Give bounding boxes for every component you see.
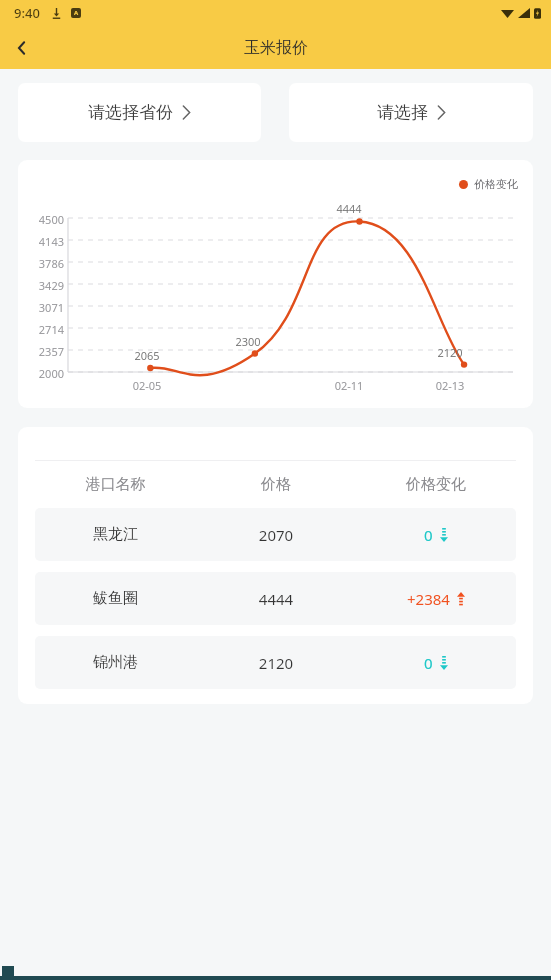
staticText: 价格变化 [474, 177, 518, 191]
staticText: 价格 [196, 475, 356, 494]
staticText: 2714 [28, 322, 64, 337]
staticText: 02-13 [432, 378, 468, 393]
staticText: 2070 [196, 525, 356, 545]
staticText: 3429 [28, 278, 64, 293]
button[interactable]: Back [0, 26, 44, 69]
staticText: 4500 [28, 212, 64, 227]
staticText: 2357 [28, 344, 64, 359]
staticText: 鲅鱼圈 [35, 589, 196, 608]
staticText: 02-11 [331, 378, 367, 393]
button[interactable]: 鲅鱼圈 [35, 572, 516, 625]
staticText: 2300 [231, 334, 265, 349]
staticText: +2384 [407, 589, 450, 609]
staticText: 价格变化 [356, 475, 516, 494]
button[interactable]: 锦州港 [35, 636, 516, 689]
staticText: 请选择省份 [88, 102, 173, 123]
button[interactable]: 请选择 [289, 83, 533, 142]
staticText: 2120 [433, 345, 467, 360]
staticText: 0 [424, 525, 433, 545]
staticText: 玉米报价 [244, 38, 308, 58]
staticText: A [74, 9, 79, 17]
button[interactable]: 黑龙江 [35, 508, 516, 561]
staticText: 2000 [28, 366, 64, 381]
staticText: 9:40 [14, 4, 40, 22]
staticText: 2065 [130, 348, 164, 363]
staticText: 4444 [332, 201, 366, 216]
staticText: 请选择 [377, 102, 428, 123]
staticText: 锦州港 [35, 653, 196, 672]
staticText: 黑龙江 [35, 525, 196, 544]
staticText: 02-05 [129, 378, 165, 393]
staticText: 港口名称 [35, 475, 196, 494]
staticText: 3071 [28, 300, 64, 315]
button[interactable]: 请选择省份 [18, 83, 261, 142]
staticText: 2120 [196, 653, 356, 673]
staticText: 3786 [28, 256, 64, 271]
staticText: 0 [424, 653, 433, 673]
staticText: 4444 [196, 589, 356, 609]
staticText: 4143 [28, 234, 64, 249]
